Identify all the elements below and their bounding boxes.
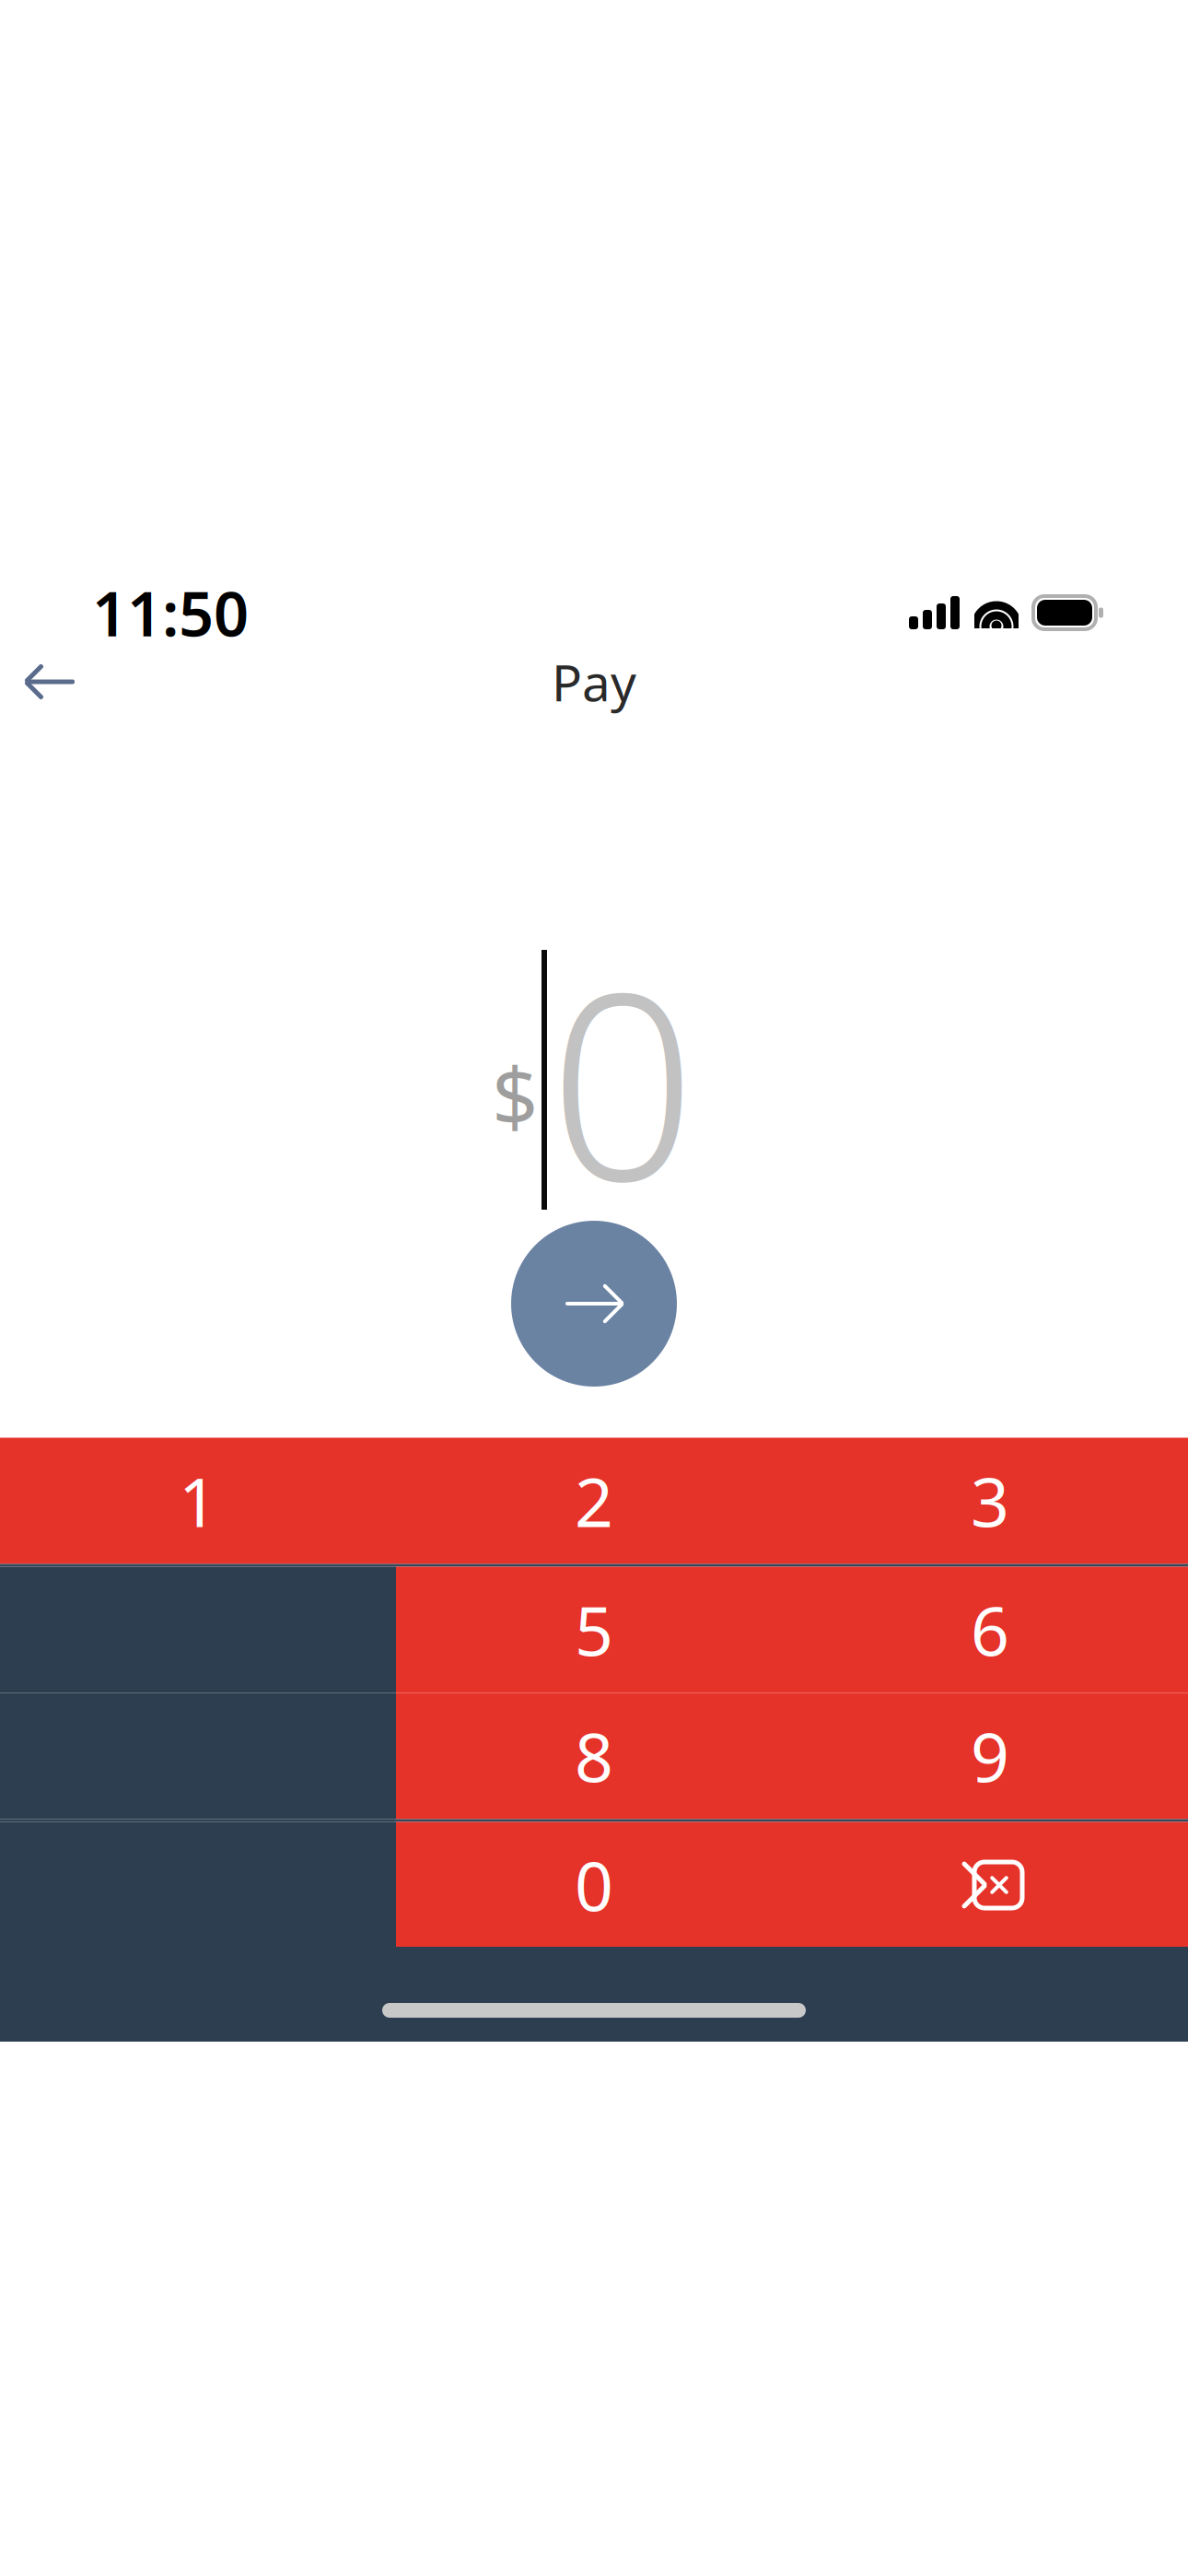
staticText: 11:50 — [92, 572, 249, 653]
button[interactable]: 1 — [0, 1438, 396, 1564]
staticText: 8 — [575, 1711, 613, 1801]
button[interactable]: Continue — [511, 1221, 677, 1387]
staticText: 0 — [575, 1840, 613, 1930]
staticText: Pay — [552, 648, 636, 715]
button[interactable]: 9 — [792, 1693, 1188, 1819]
staticText: 2 — [575, 1456, 613, 1546]
staticText: 1 — [179, 1456, 217, 1546]
staticText: $ — [492, 1041, 538, 1148]
button[interactable]: 2 — [396, 1438, 792, 1564]
button[interactable]: 3 — [792, 1438, 1188, 1564]
button[interactable]: Back — [0, 643, 101, 720]
staticText: 6 — [971, 1585, 1009, 1675]
button[interactable]: 8 — [396, 1693, 792, 1819]
button[interactable]: 5 — [396, 1567, 792, 1693]
staticText: 3 — [971, 1456, 1009, 1546]
button[interactable]: 0 — [396, 1822, 792, 1948]
button[interactable]: 6 — [792, 1567, 1188, 1693]
button[interactable]: Delete — [792, 1822, 1188, 1948]
staticText: 0 — [549, 909, 696, 1251]
staticText: 5 — [575, 1585, 613, 1675]
staticText: 9 — [971, 1711, 1009, 1801]
